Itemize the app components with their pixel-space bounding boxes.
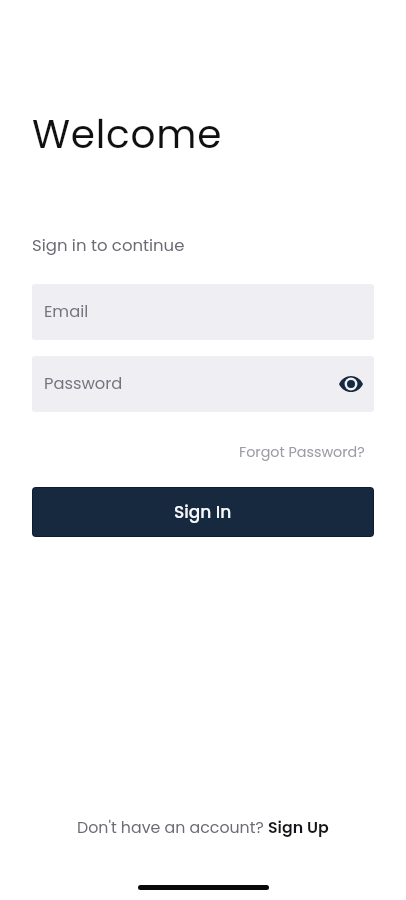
- button[interactable]: Email: [32, 284, 374, 340]
- button[interactable]: Sign In: [33, 488, 373, 536]
- button[interactable]: Forgot Password?: [239, 442, 365, 462]
- staticText: Sign in to continue: [32, 234, 185, 257]
- button[interactable]: Show password: [335, 368, 367, 400]
- staticText: Forgot Password?: [239, 442, 365, 462]
- staticText: Sign In: [174, 500, 232, 524]
- staticText: Password: [44, 372, 123, 395]
- button[interactable]: Don't have an account? Sign Up: [77, 816, 329, 838]
- button[interactable]: Password: [32, 356, 374, 412]
- staticText: Email: [44, 300, 89, 323]
- staticText: Welcome: [32, 107, 223, 162]
- staticText: Don't have an account? Sign Up: [77, 816, 329, 838]
